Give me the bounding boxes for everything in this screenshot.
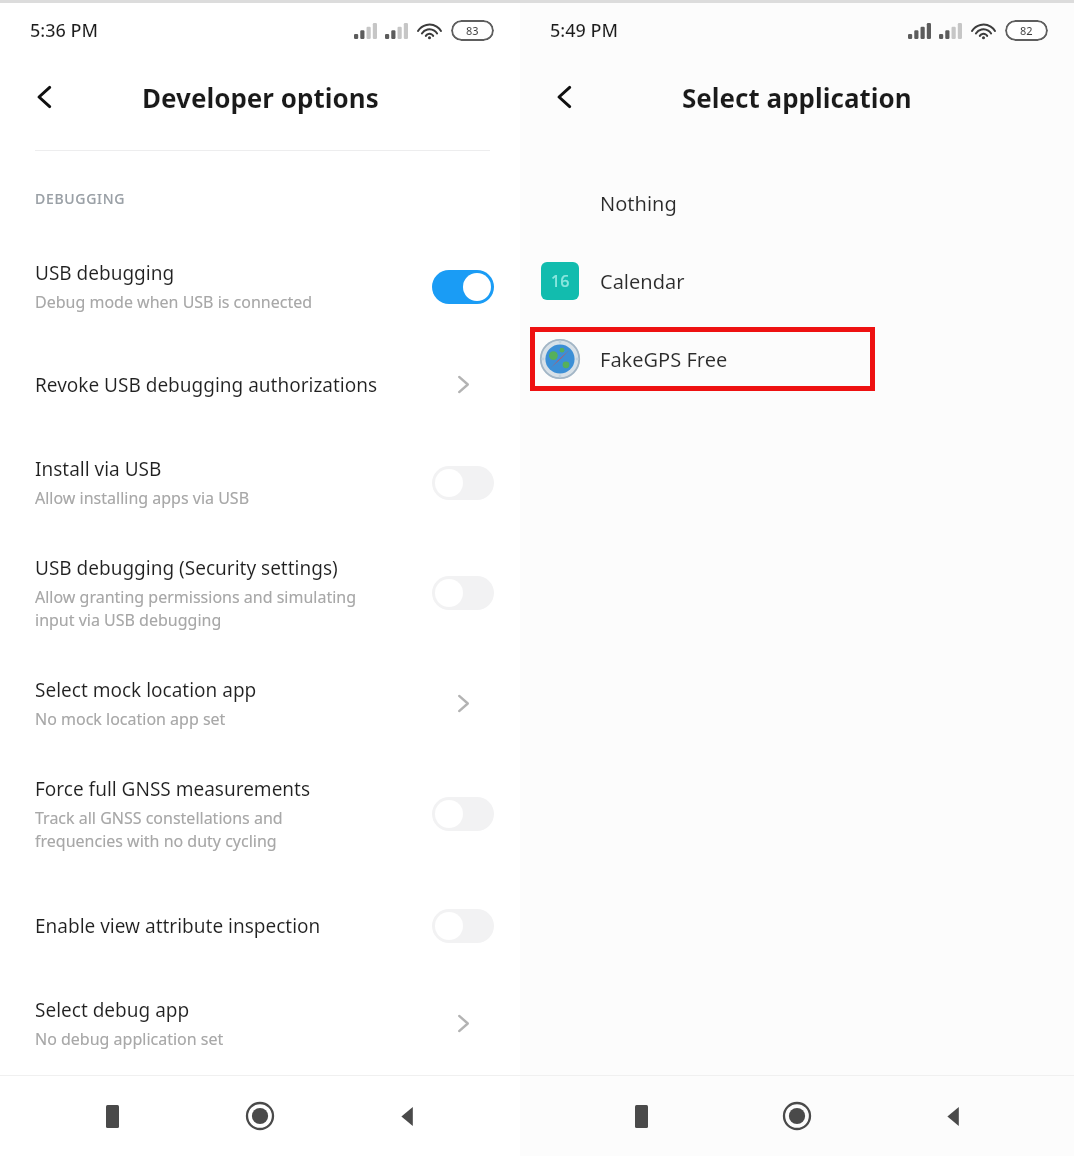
button[interactable]: Recents: [76, 1080, 148, 1152]
button[interactable]: FakeGPS Free: [520, 320, 1074, 398]
button[interactable]: Off: [432, 576, 494, 610]
staticText: Revoke USB debugging authorizations: [35, 372, 378, 398]
staticText: Wait for debugger: [35, 1088, 199, 1114]
button[interactable]: Back: [918, 1080, 990, 1152]
staticText: Install via USB: [35, 456, 162, 482]
staticText: Allow installing apps via USB: [35, 487, 250, 509]
button[interactable]: Select debug app: [0, 975, 520, 1072]
button[interactable]: Install via USB: [0, 434, 520, 531]
staticText: 5:36 PM: [30, 18, 98, 43]
staticText: Select debug app: [35, 997, 190, 1023]
staticText: 82: [1020, 23, 1033, 38]
button[interactable]: Back: [536, 68, 594, 126]
staticText: 83: [466, 23, 479, 38]
staticText: 16: [551, 270, 570, 292]
staticText: Developer options: [142, 80, 379, 115]
button[interactable]: Select mock location app: [0, 655, 520, 752]
button[interactable]: Off: [432, 466, 494, 500]
staticText: 5:49 PM: [550, 18, 618, 43]
button[interactable]: On: [432, 270, 494, 304]
staticText: DEBUGGING: [35, 189, 126, 208]
button[interactable]: Off: [432, 909, 494, 943]
button[interactable]: Enable view attribute inspection: [0, 876, 520, 975]
staticText: USB debugging (Security settings): [35, 555, 338, 581]
staticText: Select debug application first: [35, 1119, 254, 1141]
button[interactable]: Home: [224, 1080, 296, 1152]
button[interactable]: 16: [520, 242, 1074, 320]
button[interactable]: Revoke USB debugging authorizations: [0, 335, 520, 434]
button[interactable]: Off: [432, 797, 494, 831]
staticText: Select mock location app: [35, 677, 257, 703]
button[interactable]: Nothing: [520, 164, 1074, 242]
staticText: No mock location app set: [35, 708, 226, 730]
staticText: Enable view attribute inspection: [35, 913, 321, 939]
button[interactable]: Recents: [605, 1080, 677, 1152]
staticText: Track all GNSS constellations and freque…: [35, 807, 283, 852]
button[interactable]: Back: [372, 1080, 444, 1152]
button[interactable]: Wait for debugger: [0, 1072, 520, 1156]
staticText: FakeGPS Free: [600, 346, 728, 373]
staticText: Allow granting permissions and simulatin…: [35, 586, 357, 631]
button[interactable]: Home: [761, 1080, 833, 1152]
staticText: Nothing: [600, 190, 677, 217]
button[interactable]: USB debugging (Security settings): [0, 531, 520, 655]
button[interactable]: USB debugging: [0, 238, 520, 335]
staticText: Force full GNSS measurements: [35, 776, 311, 802]
staticText: Calendar: [600, 268, 685, 295]
staticText: USB debugging: [35, 260, 175, 286]
staticText: No debug application set: [35, 1028, 224, 1050]
button[interactable]: Back: [16, 68, 74, 126]
staticText: Select application: [682, 80, 912, 115]
button[interactable]: Force full GNSS measurements: [0, 752, 520, 876]
staticText: Debug mode when USB is connected: [35, 291, 313, 313]
